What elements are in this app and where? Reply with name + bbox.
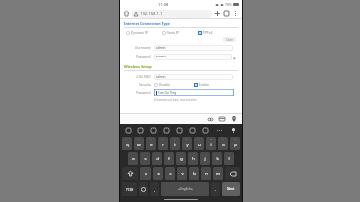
button[interactable]: 7 <box>194 137 204 150</box>
staticText: 1 <box>126 137 128 140</box>
button[interactable]: z <box>140 167 151 180</box>
staticText: Clone <box>226 38 233 42</box>
button[interactable]: Addresses <box>230 115 238 123</box>
button[interactable]: Shift <box>122 167 138 180</box>
button[interactable]: 3 <box>146 137 156 150</box>
staticText: 0 <box>234 137 236 140</box>
staticText: Username <box>135 46 151 50</box>
staticText: n <box>205 171 208 177</box>
staticText: Dynamic IP <box>131 31 148 35</box>
button[interactable]: v <box>177 167 187 180</box>
button[interactable]: PPPoE <box>198 31 234 35</box>
button[interactable]: Enable <box>194 83 234 87</box>
staticText: 3 <box>150 137 152 140</box>
staticText: Can Do Thig <box>158 91 177 95</box>
staticText: j <box>204 156 206 162</box>
button[interactable]: Home <box>122 9 131 18</box>
button[interactable]: Next <box>222 182 240 196</box>
button[interactable]: f <box>164 152 174 165</box>
button[interactable]: ◂ English ▸ <box>161 182 209 196</box>
button[interactable]: ?123 <box>122 182 137 196</box>
button[interactable]: 192.168.1.1 <box>131 10 212 18</box>
button[interactable]: . <box>211 182 220 196</box>
button[interactable]: b <box>189 167 199 180</box>
button[interactable]: g <box>176 152 186 165</box>
button[interactable]: Translate <box>186 124 199 136</box>
staticText: 78% <box>225 2 232 7</box>
button[interactable]: Disable <box>154 83 194 87</box>
button[interactable]: Theme <box>199 124 212 136</box>
button[interactable]: , <box>150 182 159 196</box>
staticText: x <box>157 171 160 177</box>
button[interactable]: x <box>153 167 163 180</box>
button[interactable]: 4 <box>158 137 168 150</box>
staticText: 8 characters at least, case sensitive <box>154 98 197 102</box>
staticText: . <box>215 187 217 192</box>
button[interactable]: 9 <box>218 137 228 150</box>
button[interactable]: h <box>188 152 198 165</box>
button[interactable]: Backspace <box>225 167 240 180</box>
button[interactable]: a <box>128 152 138 165</box>
button[interactable]: Clipboard <box>160 124 173 136</box>
button[interactable]: j <box>200 152 210 165</box>
button[interactable]: admin <box>154 74 233 80</box>
button[interactable]: Tabs <box>222 9 231 18</box>
button[interactable]: 2 <box>134 137 144 150</box>
button[interactable]: Static IP <box>162 31 198 35</box>
staticText: Next <box>227 187 235 191</box>
button[interactable]: Clone <box>223 37 236 42</box>
staticText: y <box>186 142 189 148</box>
staticText: 192.168.1.1 <box>140 11 163 17</box>
button[interactable]: d <box>152 152 162 165</box>
staticText: Security <box>139 83 151 87</box>
button[interactable]: •••••••• <box>154 54 232 60</box>
staticText: k <box>216 156 219 162</box>
staticText: 8 <box>210 137 212 140</box>
staticText: ◉ <box>233 56 236 59</box>
staticText: w <box>137 142 141 148</box>
staticText: Enable <box>199 83 210 87</box>
staticText: 4 <box>162 137 164 140</box>
staticText: •••••••• <box>156 55 166 59</box>
button[interactable]: c <box>165 167 175 180</box>
button[interactable]: m <box>213 167 223 180</box>
button[interactable]: Voice input <box>227 124 240 136</box>
staticText: PPPoE <box>203 31 213 35</box>
button[interactable]: Emoji <box>139 182 148 196</box>
staticText: Internet Connection Type <box>124 21 170 26</box>
button[interactable]: Can Do Thig <box>154 89 234 96</box>
button[interactable]: New tab <box>213 9 222 18</box>
button[interactable]: Dynamic IP <box>126 31 162 35</box>
staticText: 2 <box>138 137 140 140</box>
staticText: ?123 <box>126 187 134 192</box>
staticText: a <box>132 156 135 162</box>
button[interactable]: k <box>212 152 222 165</box>
button[interactable]: 1 <box>122 137 132 150</box>
button[interactable]: 6 <box>182 137 192 150</box>
staticText: 2.4G SSID <box>136 75 151 79</box>
button[interactable]: GIF <box>147 124 160 136</box>
staticText: admin <box>156 46 166 50</box>
button[interactable]: admin <box>154 45 233 51</box>
staticText: admin <box>156 75 166 79</box>
staticText: Disable <box>159 83 171 87</box>
staticText: i <box>210 142 212 148</box>
button[interactable]: Sticker <box>173 124 186 136</box>
button[interactable]: l <box>224 152 234 165</box>
button[interactable]: Settings <box>134 124 147 136</box>
button[interactable]: More options <box>231 9 240 18</box>
button[interactable]: 5 <box>170 137 180 150</box>
staticText: c <box>169 171 172 177</box>
button[interactable]: More <box>212 124 227 136</box>
staticText: s <box>144 156 147 162</box>
button[interactable]: Emoji <box>122 124 134 136</box>
button[interactable]: n <box>201 167 211 180</box>
button[interactable]: 8 <box>206 137 216 150</box>
button[interactable]: Passwords <box>206 115 214 123</box>
staticText: t <box>174 142 176 148</box>
button[interactable]: 0 <box>230 137 240 150</box>
staticText: 6 <box>186 137 188 140</box>
button[interactable]: s <box>140 152 150 165</box>
staticText: e <box>150 142 153 148</box>
button[interactable]: Payment methods <box>218 115 226 123</box>
